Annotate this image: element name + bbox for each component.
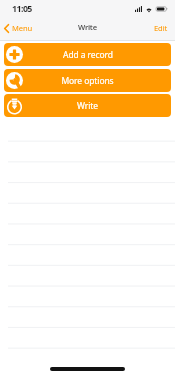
- staticText: Write: [77, 100, 98, 112]
- staticText: 11:05: [12, 3, 32, 15]
- staticText: Add a record: [63, 49, 113, 61]
- staticText: Write: [78, 22, 97, 32]
- button[interactable]: More options: [4, 69, 171, 92]
- staticText: More options: [61, 75, 114, 87]
- button[interactable]: Edit: [146, 19, 175, 37]
- staticText: Edit: [154, 23, 168, 33]
- staticText: Menu: [12, 23, 33, 33]
- button[interactable]: Menu: [0, 19, 39, 37]
- button[interactable]: Write: [4, 94, 171, 117]
- button[interactable]: Add a record: [4, 43, 171, 66]
